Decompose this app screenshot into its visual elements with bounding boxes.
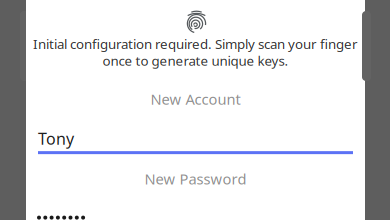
staticText: New Account [150, 89, 240, 109]
button[interactable]: Tony [38, 128, 353, 154]
staticText: Tony [38, 128, 74, 149]
staticText: Initial configuration required. Simply s… [33, 35, 358, 53]
button[interactable]: New Password [26, 159, 365, 199]
button[interactable]: New Account [26, 79, 365, 119]
staticText: New Password [144, 169, 246, 189]
staticText: once to generate unique keys. [102, 52, 288, 69]
button[interactable] [26, 216, 365, 220]
